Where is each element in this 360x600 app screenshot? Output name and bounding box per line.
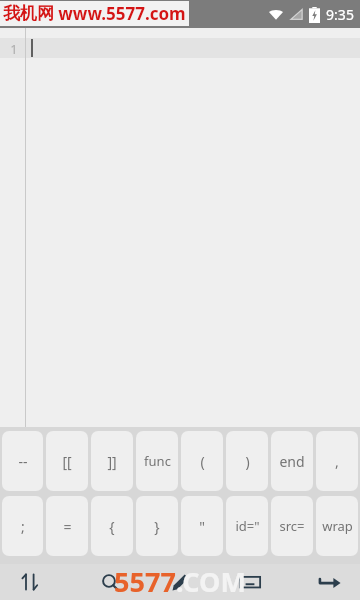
button[interactable]: end: [271, 431, 313, 491]
button[interactable]: ,: [316, 431, 358, 491]
staticText: 9:35: [326, 5, 354, 24]
button[interactable]: }: [136, 496, 178, 556]
button[interactable]: Edit: [152, 564, 208, 600]
button[interactable]: id=": [226, 496, 268, 556]
staticText: ]]: [107, 452, 117, 471]
staticText: ": [199, 517, 205, 536]
button[interactable]: Move up or down: [0, 564, 60, 600]
staticText: func: [144, 452, 171, 470]
button[interactable]: ): [226, 431, 268, 491]
button[interactable]: Keyboard: [222, 564, 278, 600]
staticText: 5577: [114, 563, 176, 599]
staticText: id=": [235, 517, 260, 535]
button[interactable]: [[: [46, 431, 88, 491]
button[interactable]: ": [181, 496, 223, 556]
staticText: [[: [62, 452, 72, 471]
staticText: {: [109, 517, 115, 536]
staticText: wrap: [322, 517, 353, 535]
staticText: www.5577.com: [58, 2, 186, 25]
button[interactable]: ;: [2, 496, 43, 556]
staticText: ;: [21, 517, 25, 536]
staticText: ): [245, 452, 250, 471]
button[interactable]: (: [181, 431, 223, 491]
staticText: .COM: [176, 563, 246, 599]
button[interactable]: src=: [271, 496, 313, 556]
staticText: src=: [279, 517, 305, 535]
staticText: ,: [335, 452, 339, 471]
button[interactable]: Tab: [300, 564, 360, 600]
button[interactable]: func: [136, 431, 178, 491]
button[interactable]: --: [2, 431, 43, 491]
staticText: 我机网: [3, 3, 54, 24]
button[interactable]: ]]: [91, 431, 133, 491]
button[interactable]: =: [46, 496, 88, 556]
staticText: (: [200, 452, 205, 471]
button[interactable]: wrap: [316, 496, 358, 556]
staticText: }: [154, 517, 160, 536]
button[interactable]: {: [91, 496, 133, 556]
staticText: end: [279, 452, 305, 471]
button[interactable]: Search: [82, 564, 138, 600]
staticText: 1: [10, 40, 18, 58]
staticText: --: [18, 452, 28, 471]
staticText: =: [63, 517, 72, 536]
